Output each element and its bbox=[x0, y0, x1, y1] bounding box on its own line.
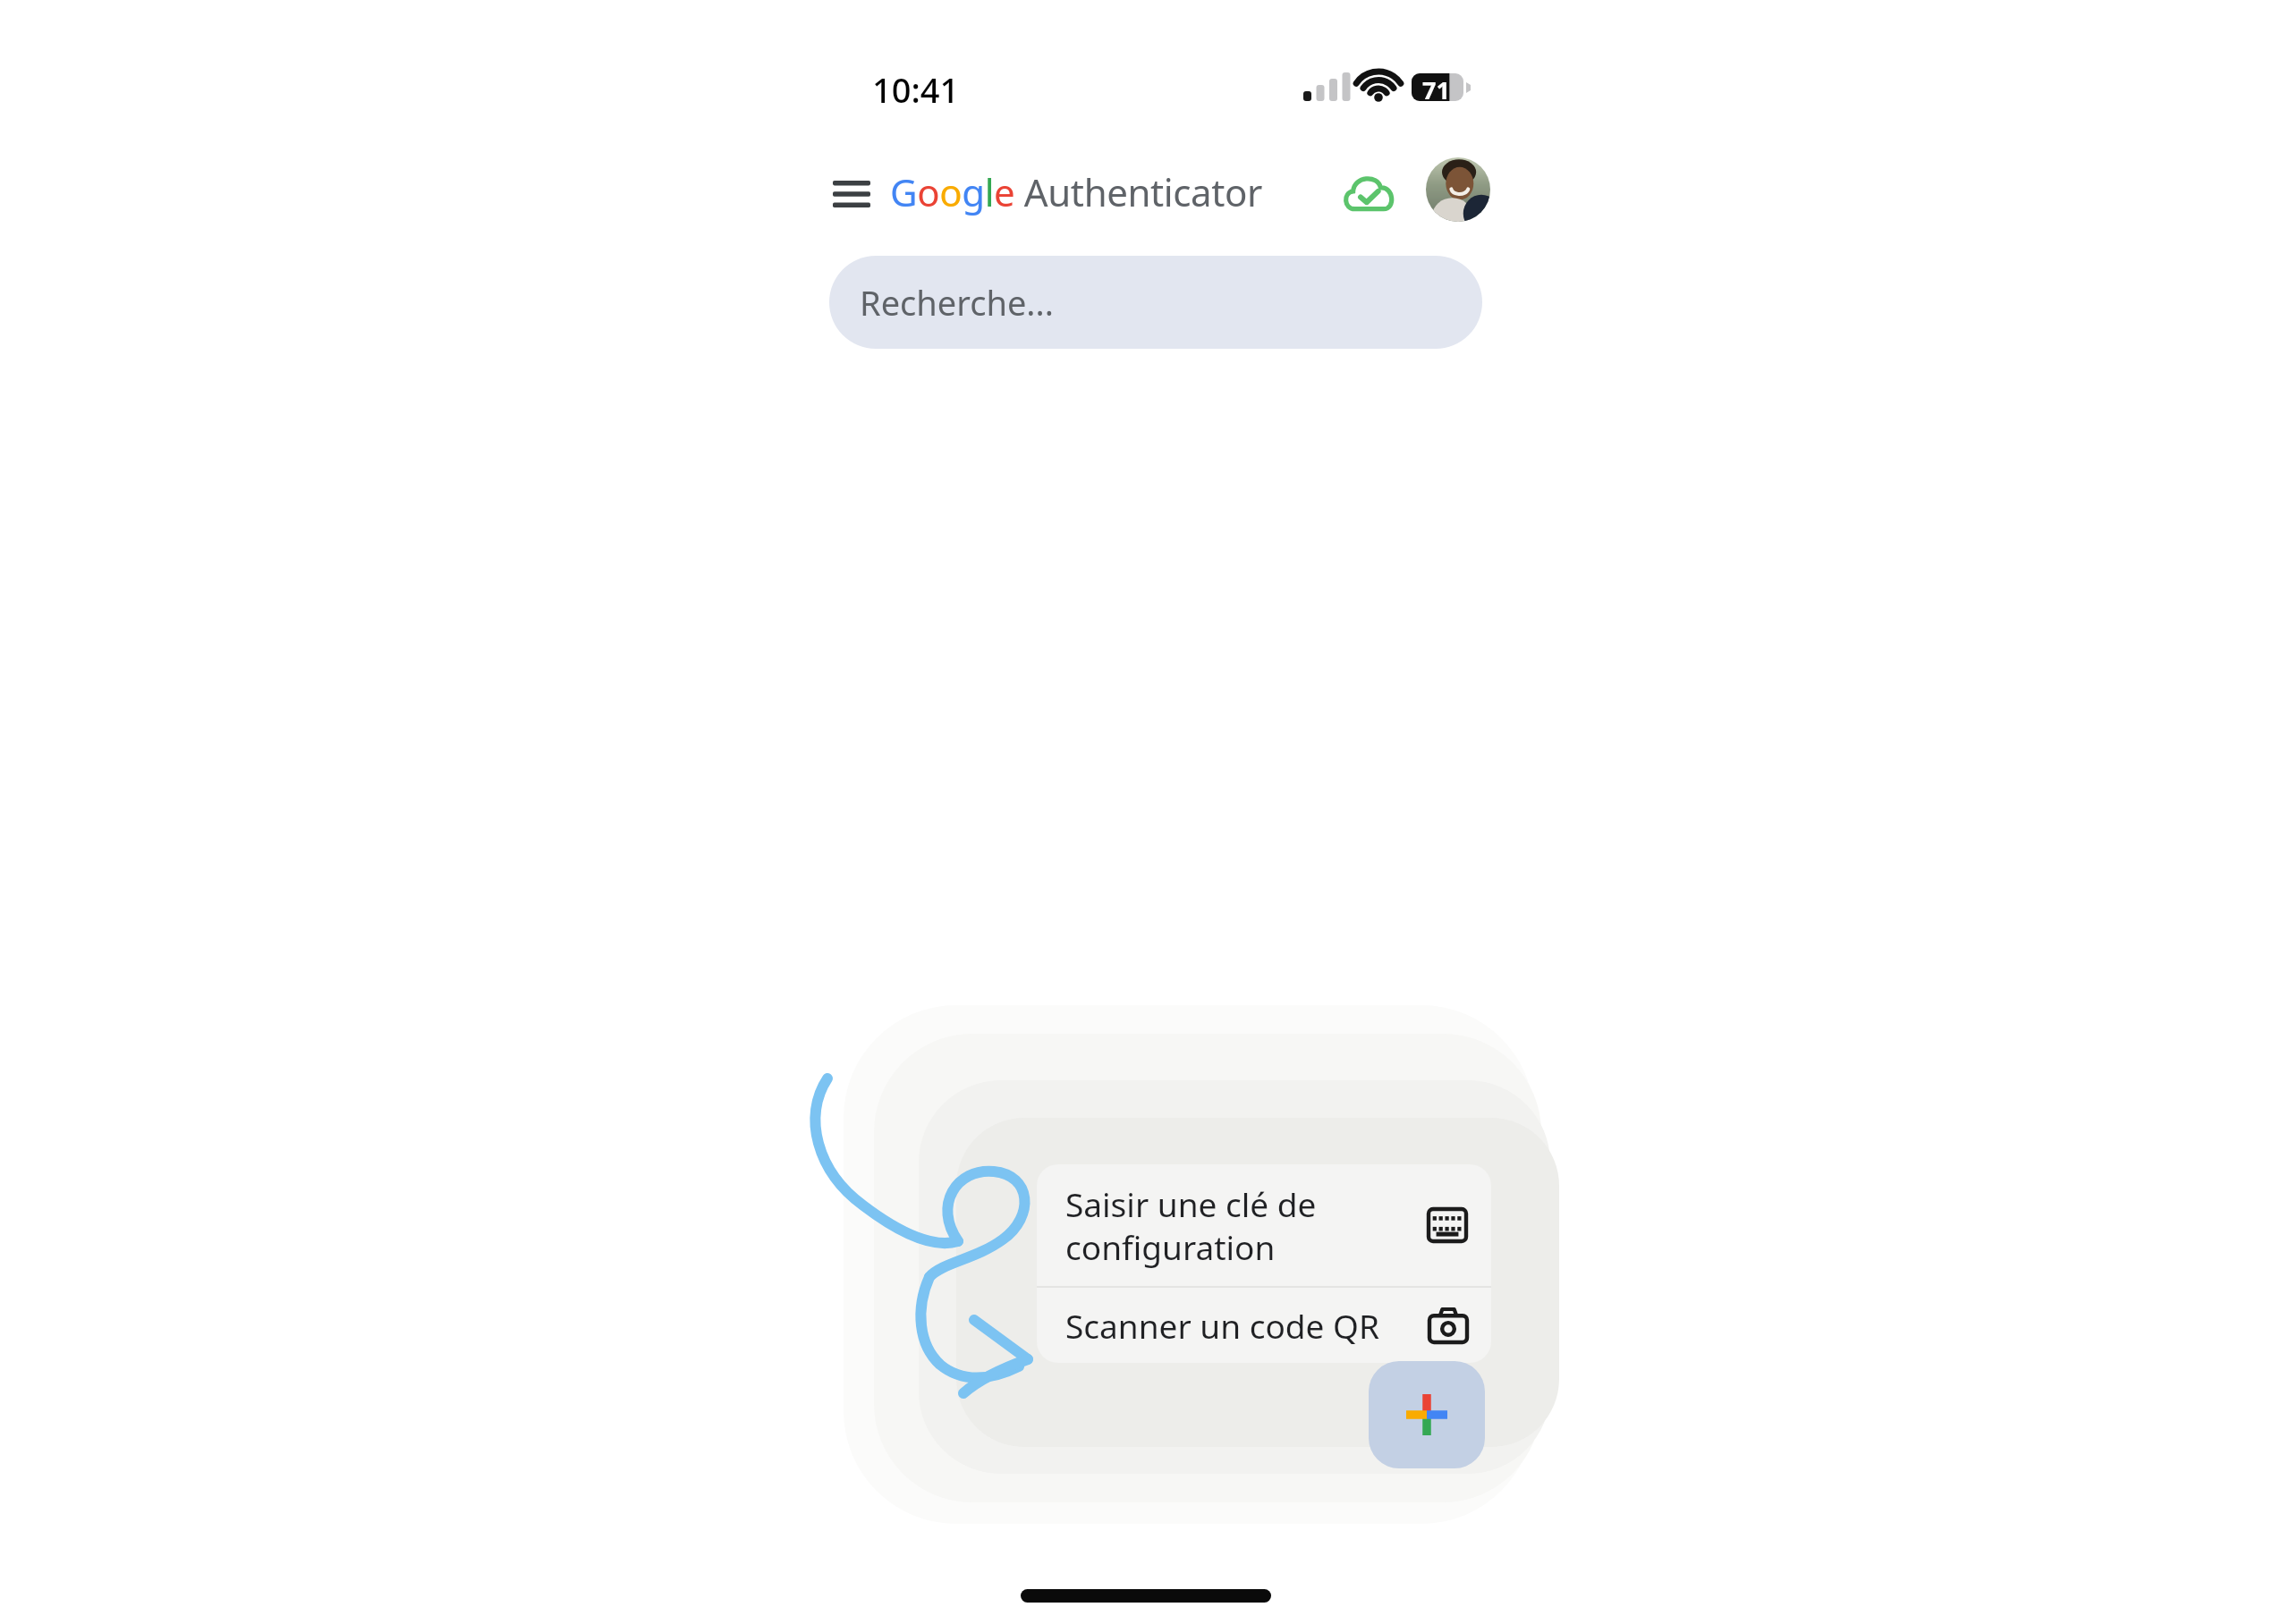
staticText: 71 bbox=[1422, 73, 1450, 106]
button[interactable]: Recherche... bbox=[829, 256, 1482, 349]
button[interactable]: Sync status bbox=[1334, 159, 1404, 229]
staticText: Recherche... bbox=[860, 279, 1054, 326]
button[interactable]: Add account bbox=[1369, 1361, 1485, 1468]
staticText: Saisir une clé de configuration bbox=[1065, 1181, 1427, 1270]
button[interactable]: Navigation menu bbox=[817, 159, 886, 229]
staticText: Google Authenticator bbox=[890, 166, 1262, 217]
button[interactable]: Scanner un code QR bbox=[1037, 1288, 1491, 1363]
staticText: 10:41 bbox=[872, 66, 960, 113]
staticText: Scanner un code QR bbox=[1065, 1303, 1429, 1348]
button[interactable]: Saisir une clé de configuration bbox=[1037, 1164, 1491, 1286]
button[interactable]: Account profile bbox=[1426, 157, 1490, 222]
